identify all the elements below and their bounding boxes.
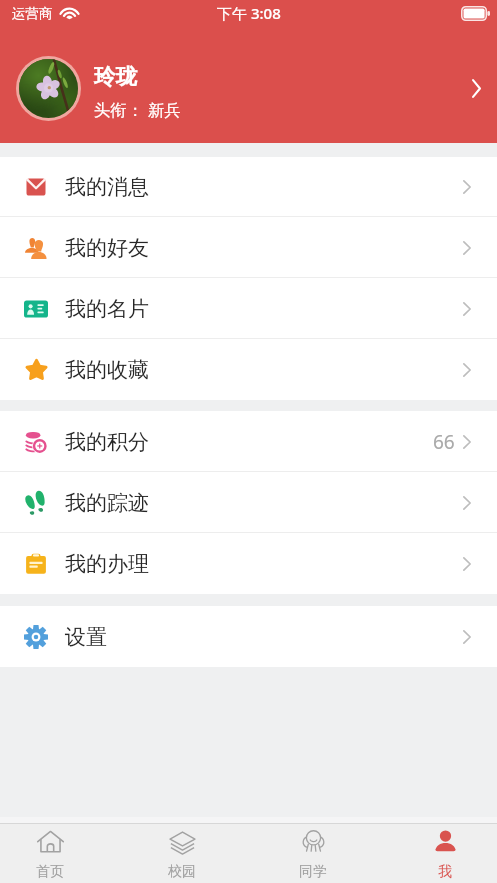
staticText: 下午 3:08 <box>217 3 281 23</box>
button[interactable]: 我的积分 <box>0 411 497 472</box>
button[interactable]: 我的好友 <box>0 217 497 278</box>
staticText: 我 <box>438 863 452 881</box>
staticText: 我的名片 <box>65 296 149 322</box>
staticText: 我的办理 <box>65 551 149 577</box>
button[interactable]: 我的收藏 <box>0 339 497 400</box>
staticText: 我的好友 <box>65 235 149 261</box>
button[interactable]: 设置 <box>0 606 497 667</box>
staticText: 玲珑 <box>94 63 137 90</box>
staticText: 我的踪迹 <box>65 490 149 516</box>
staticText: 同学 <box>299 863 327 881</box>
staticText: 头衔： 新兵 <box>94 98 181 121</box>
staticText: 66 <box>433 429 455 455</box>
button[interactable]: 首页 <box>17 824 83 883</box>
button[interactable]: 校园 <box>149 824 215 883</box>
button[interactable]: 同学 <box>280 824 346 883</box>
staticText: 校园 <box>168 863 196 881</box>
staticText: 我的消息 <box>65 174 149 200</box>
button[interactable]: 我的办理 <box>0 533 497 594</box>
button[interactable]: 我的踪迹 <box>0 472 497 533</box>
button[interactable]: 我的名片 <box>0 278 497 339</box>
button[interactable]: Profile details <box>458 70 494 106</box>
button[interactable]: 我 <box>412 824 478 883</box>
staticText: 首页 <box>36 863 64 881</box>
staticText: 我的积分 <box>65 429 149 455</box>
staticText: 我的收藏 <box>65 357 149 383</box>
staticText: 设置 <box>65 624 107 650</box>
staticText: 运营商 <box>12 5 53 22</box>
button[interactable]: 我的消息 <box>0 157 497 217</box>
